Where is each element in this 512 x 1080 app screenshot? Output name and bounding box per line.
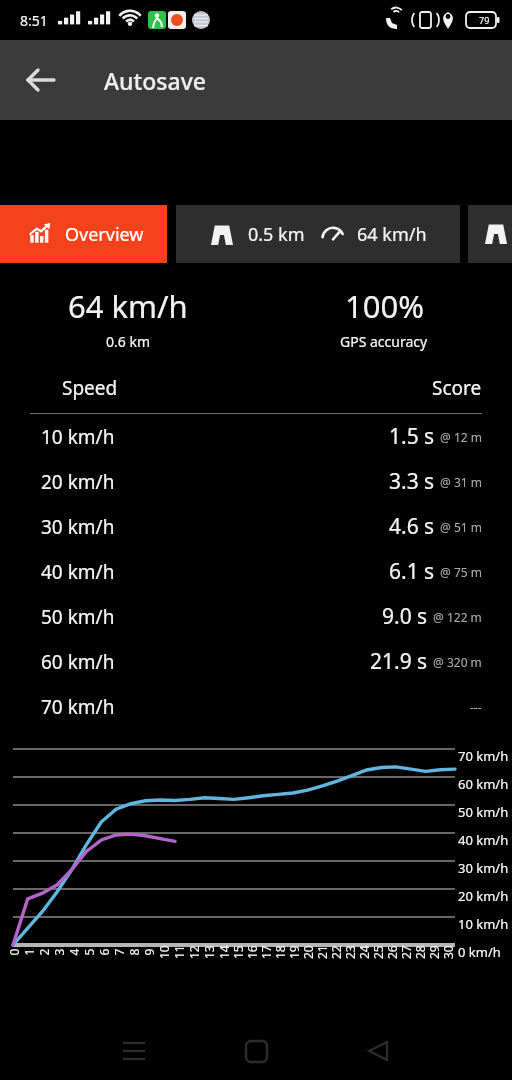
staticText: 64 km/h [357, 222, 427, 247]
staticText: 30 km/h [41, 514, 115, 540]
staticText: @ 320 m [433, 654, 482, 670]
staticText: 1.5 s [389, 422, 435, 451]
staticText: 12 [186, 945, 202, 959]
staticText: 28 [412, 945, 428, 959]
staticText: 60 km/h [41, 649, 115, 675]
staticText: 70 km/h [458, 747, 509, 765]
staticText: 21 [314, 945, 330, 959]
staticText: 20 km/h [458, 887, 509, 905]
staticText: 60 km/h [458, 775, 509, 793]
staticText: 26 [384, 945, 400, 959]
staticText: 19 [286, 945, 302, 959]
staticText: 50 km/h [458, 803, 509, 821]
button[interactable]: Recents [110, 1027, 158, 1075]
button[interactable]: 20 km/h [30, 459, 482, 504]
staticText: 0 [5, 948, 21, 955]
staticText: 20 [300, 945, 316, 959]
staticText: 23 [342, 945, 358, 959]
staticText: Autosave [104, 65, 207, 96]
button[interactable]: 50 km/h [30, 594, 482, 639]
staticText: 14 [216, 945, 232, 959]
staticText: 21.9 s [370, 647, 428, 676]
staticText: 10 km/h [41, 424, 115, 450]
staticText: 10 km/h [458, 915, 509, 933]
staticText: @ 12 m [440, 429, 482, 445]
staticText: 0.5 km [248, 222, 305, 247]
staticText: 6 [95, 948, 111, 955]
staticText: 22 [328, 945, 344, 959]
staticText: 50 km/h [41, 604, 115, 630]
button[interactable]: Home [232, 1027, 280, 1075]
button[interactable]: 10 km/h [30, 414, 482, 459]
staticText: 4.6 s [389, 512, 435, 541]
staticText: 18 [272, 945, 288, 959]
staticText: 2 [35, 948, 51, 955]
staticText: GPS accuracy [340, 332, 428, 351]
staticText: 100% [345, 285, 424, 327]
button[interactable]: 70 km/h [30, 684, 482, 729]
staticText: 10 [156, 945, 172, 959]
staticText: 0.6 km [106, 332, 150, 351]
staticText: --- [470, 699, 482, 715]
staticText: 5 [80, 948, 96, 955]
staticText: 3 [50, 948, 66, 955]
button[interactable]: Back [14, 53, 68, 107]
staticText: 8:51 [20, 11, 48, 30]
button[interactable]: Overview [0, 205, 167, 263]
staticText: @ 51 m [440, 519, 482, 535]
staticText: 4 [65, 948, 81, 955]
staticText: Overview [65, 222, 144, 247]
button[interactable]: 0.5 km [176, 205, 460, 263]
staticText: @ 75 m [440, 564, 482, 580]
staticText: Speed [62, 375, 118, 401]
staticText: 7 [110, 948, 126, 955]
staticText: 9.0 s [382, 602, 428, 631]
staticText: 3.3 s [389, 467, 435, 496]
staticText: 25 [370, 945, 386, 959]
staticText: 11 [171, 945, 187, 959]
staticText: 13 [201, 945, 217, 959]
staticText: 20 km/h [41, 469, 115, 495]
button[interactable]: Next segment [468, 205, 512, 263]
button[interactable]: 60 km/h [30, 639, 482, 684]
staticText: 70 km/h [41, 694, 115, 720]
staticText: 30 [440, 945, 456, 959]
staticText: 64 km/h [68, 285, 188, 327]
staticText: 79 [479, 14, 490, 26]
staticText: 8 [125, 948, 141, 955]
staticText: 9 [140, 948, 156, 955]
staticText: 27 [398, 945, 414, 959]
staticText: 40 km/h [41, 559, 115, 585]
staticText: 15 [230, 945, 246, 959]
staticText: 24 [356, 945, 372, 959]
staticText: 40 km/h [458, 831, 509, 849]
staticText: Score [432, 375, 482, 401]
staticText: 30 km/h [458, 859, 509, 877]
button[interactable]: 30 km/h [30, 504, 482, 549]
staticText: @ 31 m [440, 474, 482, 490]
staticText: 1 [20, 948, 36, 955]
staticText: 0 km/h [458, 943, 501, 961]
staticText: @ 122 m [433, 609, 482, 625]
staticText: 16 [244, 945, 260, 959]
button[interactable]: Back [354, 1027, 402, 1075]
staticText: 17 [258, 945, 274, 959]
staticText: 6.1 s [389, 557, 435, 586]
staticText: 29 [426, 945, 442, 959]
button[interactable]: 40 km/h [30, 549, 482, 594]
